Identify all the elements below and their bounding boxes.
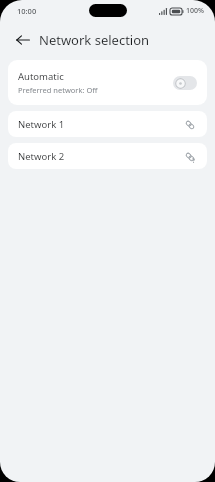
staticText: Network 1 <box>18 118 182 131</box>
other: Unknown network link <box>182 149 197 164</box>
staticText: Network selection <box>39 31 150 49</box>
staticText: 100% <box>186 6 204 16</box>
staticText: Network 2 <box>18 150 182 163</box>
button[interactable]: Automatic <box>8 60 207 105</box>
staticText: Preferred network: Off <box>18 85 98 95</box>
staticText: Automatic <box>18 70 64 83</box>
button[interactable]: Back <box>10 27 36 53</box>
button[interactable]: Network 1 <box>8 111 207 137</box>
button[interactable]: Automatic network toggle <box>173 76 197 90</box>
staticText: 10:00 <box>17 6 37 16</box>
button[interactable]: Network 2 <box>8 143 207 169</box>
other: Network link <box>182 117 197 132</box>
